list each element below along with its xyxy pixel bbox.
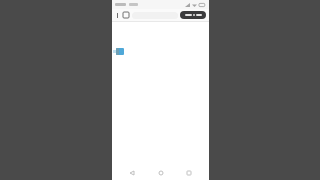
button[interactable]: Menu [115,10,120,20]
button[interactable]: Tabs [122,10,130,20]
button[interactable]: Home [152,165,170,180]
button[interactable]: Back [123,165,141,180]
button[interactable]: Recent apps [180,165,198,180]
button[interactable] [180,11,206,19]
button[interactable] [116,48,124,55]
